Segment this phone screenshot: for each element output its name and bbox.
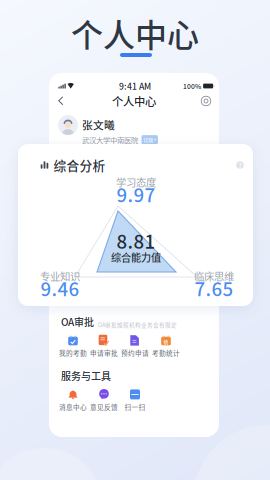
staticText: 个人中心 [71,10,199,56]
button[interactable]: Help [233,158,246,171]
staticText: 意见反馈 [90,402,118,412]
staticText: 7.65 [194,274,233,301]
staticText: 服务与工具 [61,368,111,383]
staticText: 9.46 [40,274,79,301]
button[interactable]: Back [53,93,69,109]
staticText: 综合能力值 [111,250,161,264]
staticText: 扫一扫 [124,402,145,412]
staticText: 学习态度 [116,174,156,190]
staticText: ? [238,160,241,170]
button[interactable]: 扫一扫 [119,388,150,412]
button[interactable]: 我的考勤 [57,334,88,358]
button[interactable]: 统 [150,334,181,358]
button[interactable]: 申请审批 [88,334,119,358]
staticText: 临床思维 [194,268,234,284]
staticText: 预约申请 [121,348,149,358]
button[interactable]: Settings [198,93,214,109]
staticText: 切换 [143,136,153,143]
staticText: 张文曦 [82,117,115,132]
staticText: 100% [183,81,201,91]
staticText: 我的考勤 [59,348,87,358]
staticText: OA审批维照机构业务会有限定 [98,321,177,329]
staticText: 8.81 [116,227,155,254]
staticText: 个人中心 [112,93,156,109]
staticText: 9:41 AM [119,80,151,92]
staticText: 综合分析 [53,156,105,174]
staticText: 消息中心 [59,402,87,412]
staticText: 考勤统计 [152,348,180,358]
staticText: 9.97 [116,180,155,207]
button[interactable]: 预约申请 [119,334,150,358]
staticText: 专业知识 [40,268,80,284]
button[interactable]: 消息中心 [57,388,88,412]
staticText: 申请审批 [90,348,118,358]
staticText: 统 [163,338,168,345]
staticText: 武汉大学中南医院 [82,134,138,145]
button[interactable]: 张文曦 [49,111,219,143]
button[interactable]: 意见反馈 [88,388,119,412]
staticText: OA审批 [61,314,94,329]
